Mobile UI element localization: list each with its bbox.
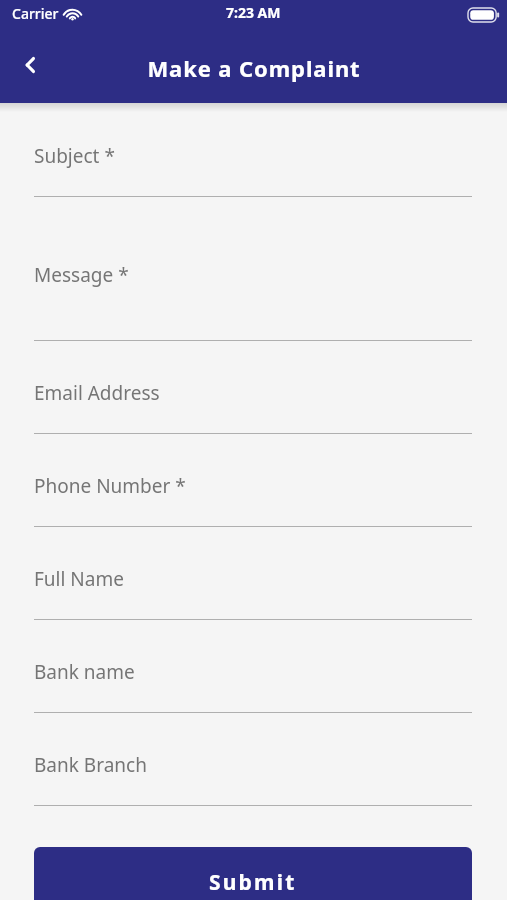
button[interactable]: Email Address	[34, 380, 472, 439]
staticText: Phone Number *	[34, 473, 186, 499]
staticText: Full Name	[34, 566, 124, 592]
staticText: Email Address	[34, 380, 160, 406]
button[interactable]: Submit	[34, 847, 472, 900]
staticText: Message *	[34, 262, 129, 288]
staticText: Make a Complaint	[147, 53, 361, 83]
staticText: Bank Branch	[34, 752, 147, 778]
button[interactable]: Back	[8, 42, 54, 88]
button[interactable]: Subject *	[34, 143, 472, 202]
staticText: Subject *	[34, 143, 115, 169]
button[interactable]: Message *	[34, 262, 472, 346]
staticText: Carrier	[12, 4, 59, 23]
staticText: Submit	[209, 868, 297, 897]
button[interactable]: Full Name	[34, 566, 472, 625]
staticText: 7:23 AM	[226, 3, 281, 22]
staticText: Bank name	[34, 659, 135, 685]
button[interactable]: Bank name	[34, 659, 472, 718]
button[interactable]: Phone Number *	[34, 473, 472, 532]
button[interactable]: Bank Branch	[34, 752, 472, 811]
